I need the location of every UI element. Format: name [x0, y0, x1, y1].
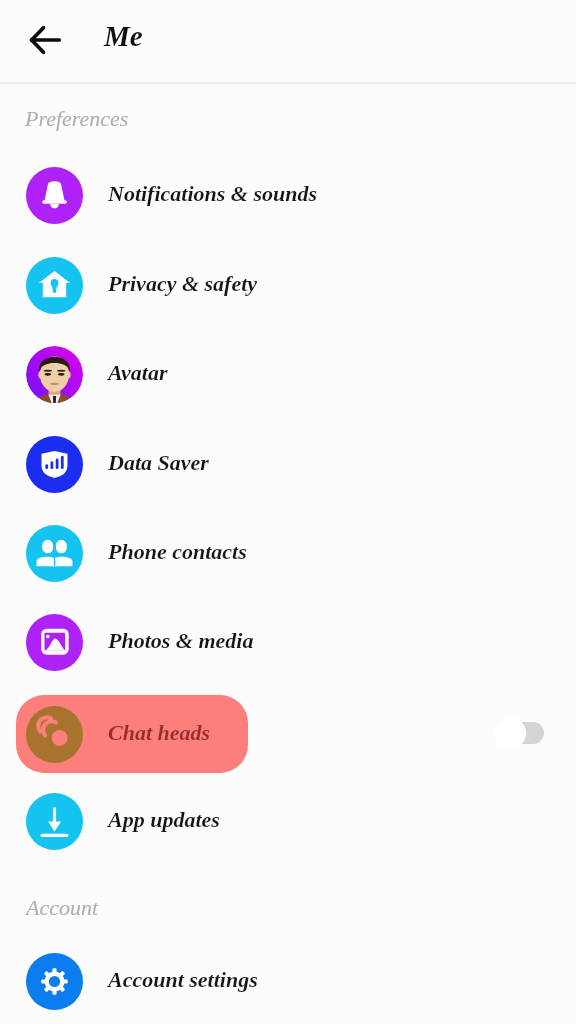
button[interactable]: Data Saver [0, 420, 576, 509]
staticText: Preferences [25, 106, 129, 130]
button[interactable]: Back [19, 14, 71, 66]
staticText: Account [26, 895, 99, 919]
staticText: Photos & media [108, 628, 254, 652]
staticText: Account settings [108, 967, 258, 991]
button[interactable]: Chat heads [16, 695, 248, 773]
staticText: Privacy & safety [108, 271, 258, 295]
staticText: Phone contacts [108, 539, 247, 563]
button[interactable]: Chat heads switch, off [494, 712, 546, 754]
button[interactable]: App updates [0, 777, 576, 866]
staticText: Data Saver [108, 450, 209, 474]
staticText: Avatar [108, 360, 168, 384]
staticText: Notifications & sounds [108, 181, 318, 205]
staticText: Me [104, 20, 143, 52]
staticText: Chat heads [108, 720, 211, 744]
button[interactable]: Notifications & sounds [0, 151, 576, 240]
button[interactable]: Account settings [0, 937, 576, 1024]
button[interactable]: Privacy & safety [0, 241, 576, 330]
staticText: App updates [108, 807, 220, 831]
button[interactable]: Phone contacts [0, 509, 576, 598]
button[interactable]: Avatar [0, 330, 576, 419]
button[interactable]: Photos & media [0, 598, 576, 687]
